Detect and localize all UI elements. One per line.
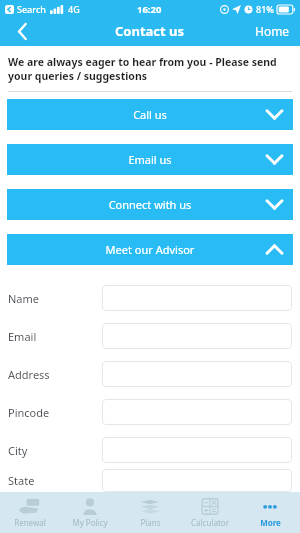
staticText: Contact us [115, 22, 185, 40]
staticText: Plans [140, 517, 161, 528]
staticText: Home [255, 23, 290, 39]
staticText: Email [8, 329, 102, 344]
button[interactable]: More [240, 492, 300, 533]
button[interactable]: Calculator [180, 492, 240, 533]
button[interactable]: Back [0, 18, 44, 44]
staticText: Meet our Advisor [7, 242, 293, 257]
button[interactable]: Renewal [0, 492, 60, 533]
button[interactable]: State [102, 469, 292, 492]
staticText: State [8, 473, 102, 488]
button[interactable]: Email us [7, 144, 293, 175]
button[interactable]: Email [102, 323, 292, 349]
staticText: Pincode [8, 405, 102, 420]
button[interactable]: Meet our Advisor [7, 234, 293, 265]
button[interactable]: Connect with us [7, 189, 293, 220]
staticText: My Policy [72, 517, 108, 528]
staticText: City [8, 443, 102, 458]
button[interactable]: Call us [7, 99, 293, 130]
staticText: 4G [68, 3, 80, 15]
button[interactable]: Pincode [102, 399, 292, 425]
staticText: 81% [256, 3, 274, 15]
staticText: Address [8, 367, 102, 382]
staticText: Connect with us [7, 197, 293, 212]
staticText: Call us [7, 107, 293, 122]
button[interactable]: Home [245, 18, 300, 44]
staticText: Calculator [191, 517, 229, 528]
button[interactable]: Plans [120, 492, 180, 533]
button[interactable]: Name [102, 285, 292, 311]
staticText: We are always eager to hear from you - P… [8, 55, 292, 83]
staticText: Search [17, 3, 46, 15]
staticText: Email us [7, 152, 293, 167]
staticText: Renewal [14, 517, 46, 528]
button[interactable]: My Policy [60, 492, 120, 533]
staticText: Name [8, 291, 102, 306]
button[interactable]: Address [102, 361, 292, 387]
staticText: 16:20 [137, 3, 162, 16]
button[interactable]: City [102, 437, 292, 463]
staticText: More [260, 517, 281, 528]
